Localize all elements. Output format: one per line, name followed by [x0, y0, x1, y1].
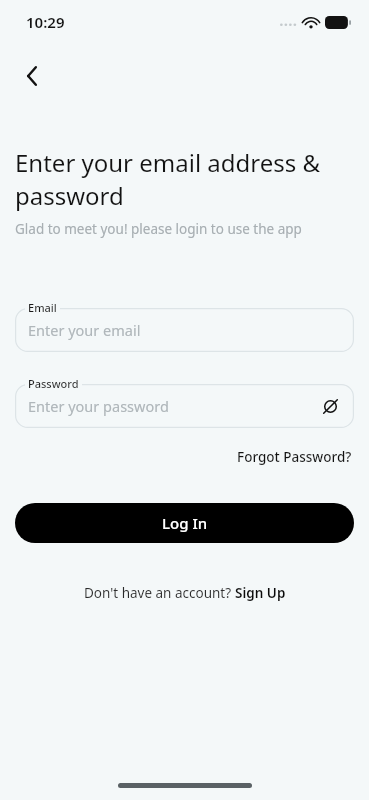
button[interactable]: Forgot Password?	[235, 444, 354, 470]
staticText: Enter your email address & password	[15, 146, 354, 212]
staticText: Enter your password	[28, 396, 169, 416]
staticText: Enter your email	[28, 320, 141, 340]
button[interactable]: Enter your password	[15, 384, 354, 428]
button[interactable]: Show password	[314, 390, 346, 422]
staticText: Password	[28, 376, 79, 391]
button[interactable]: Log In	[15, 503, 354, 543]
staticText: Log In	[162, 513, 208, 533]
button[interactable]: Sign Up	[235, 584, 286, 602]
button[interactable]: Enter your email	[15, 308, 354, 352]
staticText: Glad to meet you! please login to use th…	[15, 220, 302, 238]
staticText: 10:29	[26, 12, 65, 32]
staticText: Email	[28, 300, 57, 315]
staticText: Don't have an account?	[84, 584, 235, 602]
staticText: Sign Up	[235, 584, 286, 602]
button[interactable]: Back	[10, 54, 54, 98]
staticText: Forgot Password?	[237, 448, 352, 466]
